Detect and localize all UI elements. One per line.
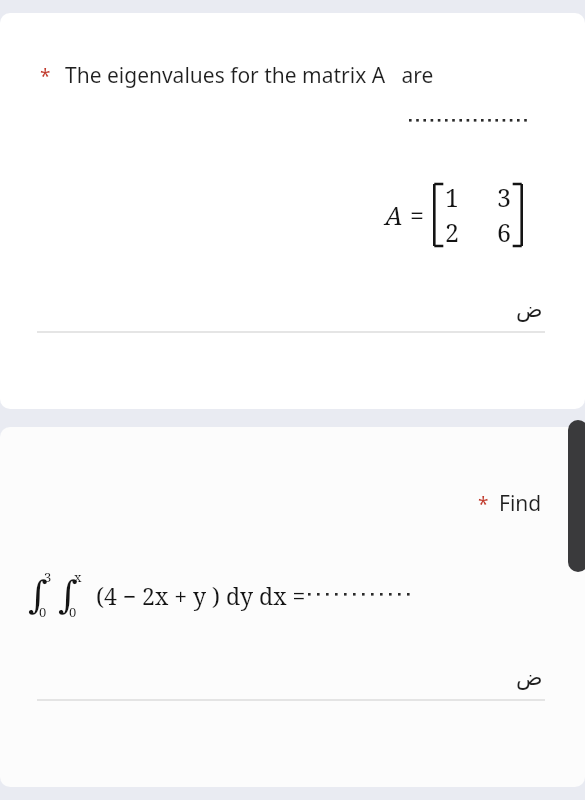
staticText: The eigenvalues for the matrix A are [65, 61, 434, 90]
staticText: 1 [445, 180, 459, 214]
staticText: 6 [497, 215, 511, 249]
staticText: (4 − 2x + y ) dy dx = [96, 580, 306, 611]
staticText: * [40, 63, 51, 89]
button[interactable]: Scroll handle [568, 420, 585, 572]
staticText: x [74, 568, 82, 586]
staticText: 0 [39, 603, 47, 621]
staticText: A [385, 198, 403, 232]
staticText: ض [516, 665, 543, 691]
staticText: ض [516, 297, 543, 323]
staticText: 0 [69, 603, 77, 621]
staticText: ∫ [28, 573, 48, 617]
button[interactable]: * [0, 427, 585, 787]
staticText: ∫ [58, 573, 78, 617]
staticText: 2 [445, 215, 459, 249]
staticText: 3 [44, 568, 52, 586]
staticText: 3 [497, 180, 511, 214]
staticText: Find [499, 489, 542, 518]
staticText: = [410, 198, 424, 232]
staticText: * [478, 491, 489, 517]
button[interactable]: * [0, 13, 585, 409]
